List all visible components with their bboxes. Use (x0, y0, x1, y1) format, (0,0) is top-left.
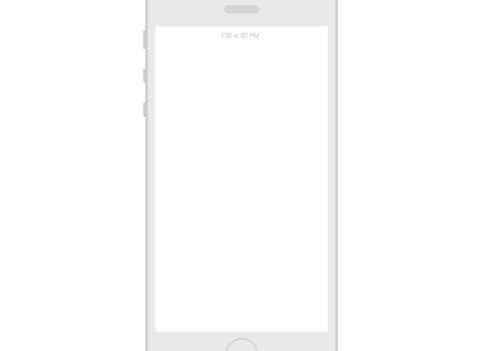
staticText: FRI 4:30 PM (221, 30, 260, 40)
button[interactable]: Side button (143, 102, 147, 117)
button[interactable]: Home (226, 339, 257, 351)
button[interactable]: Side button (143, 30, 147, 49)
button[interactable]: Side button (143, 69, 147, 83)
